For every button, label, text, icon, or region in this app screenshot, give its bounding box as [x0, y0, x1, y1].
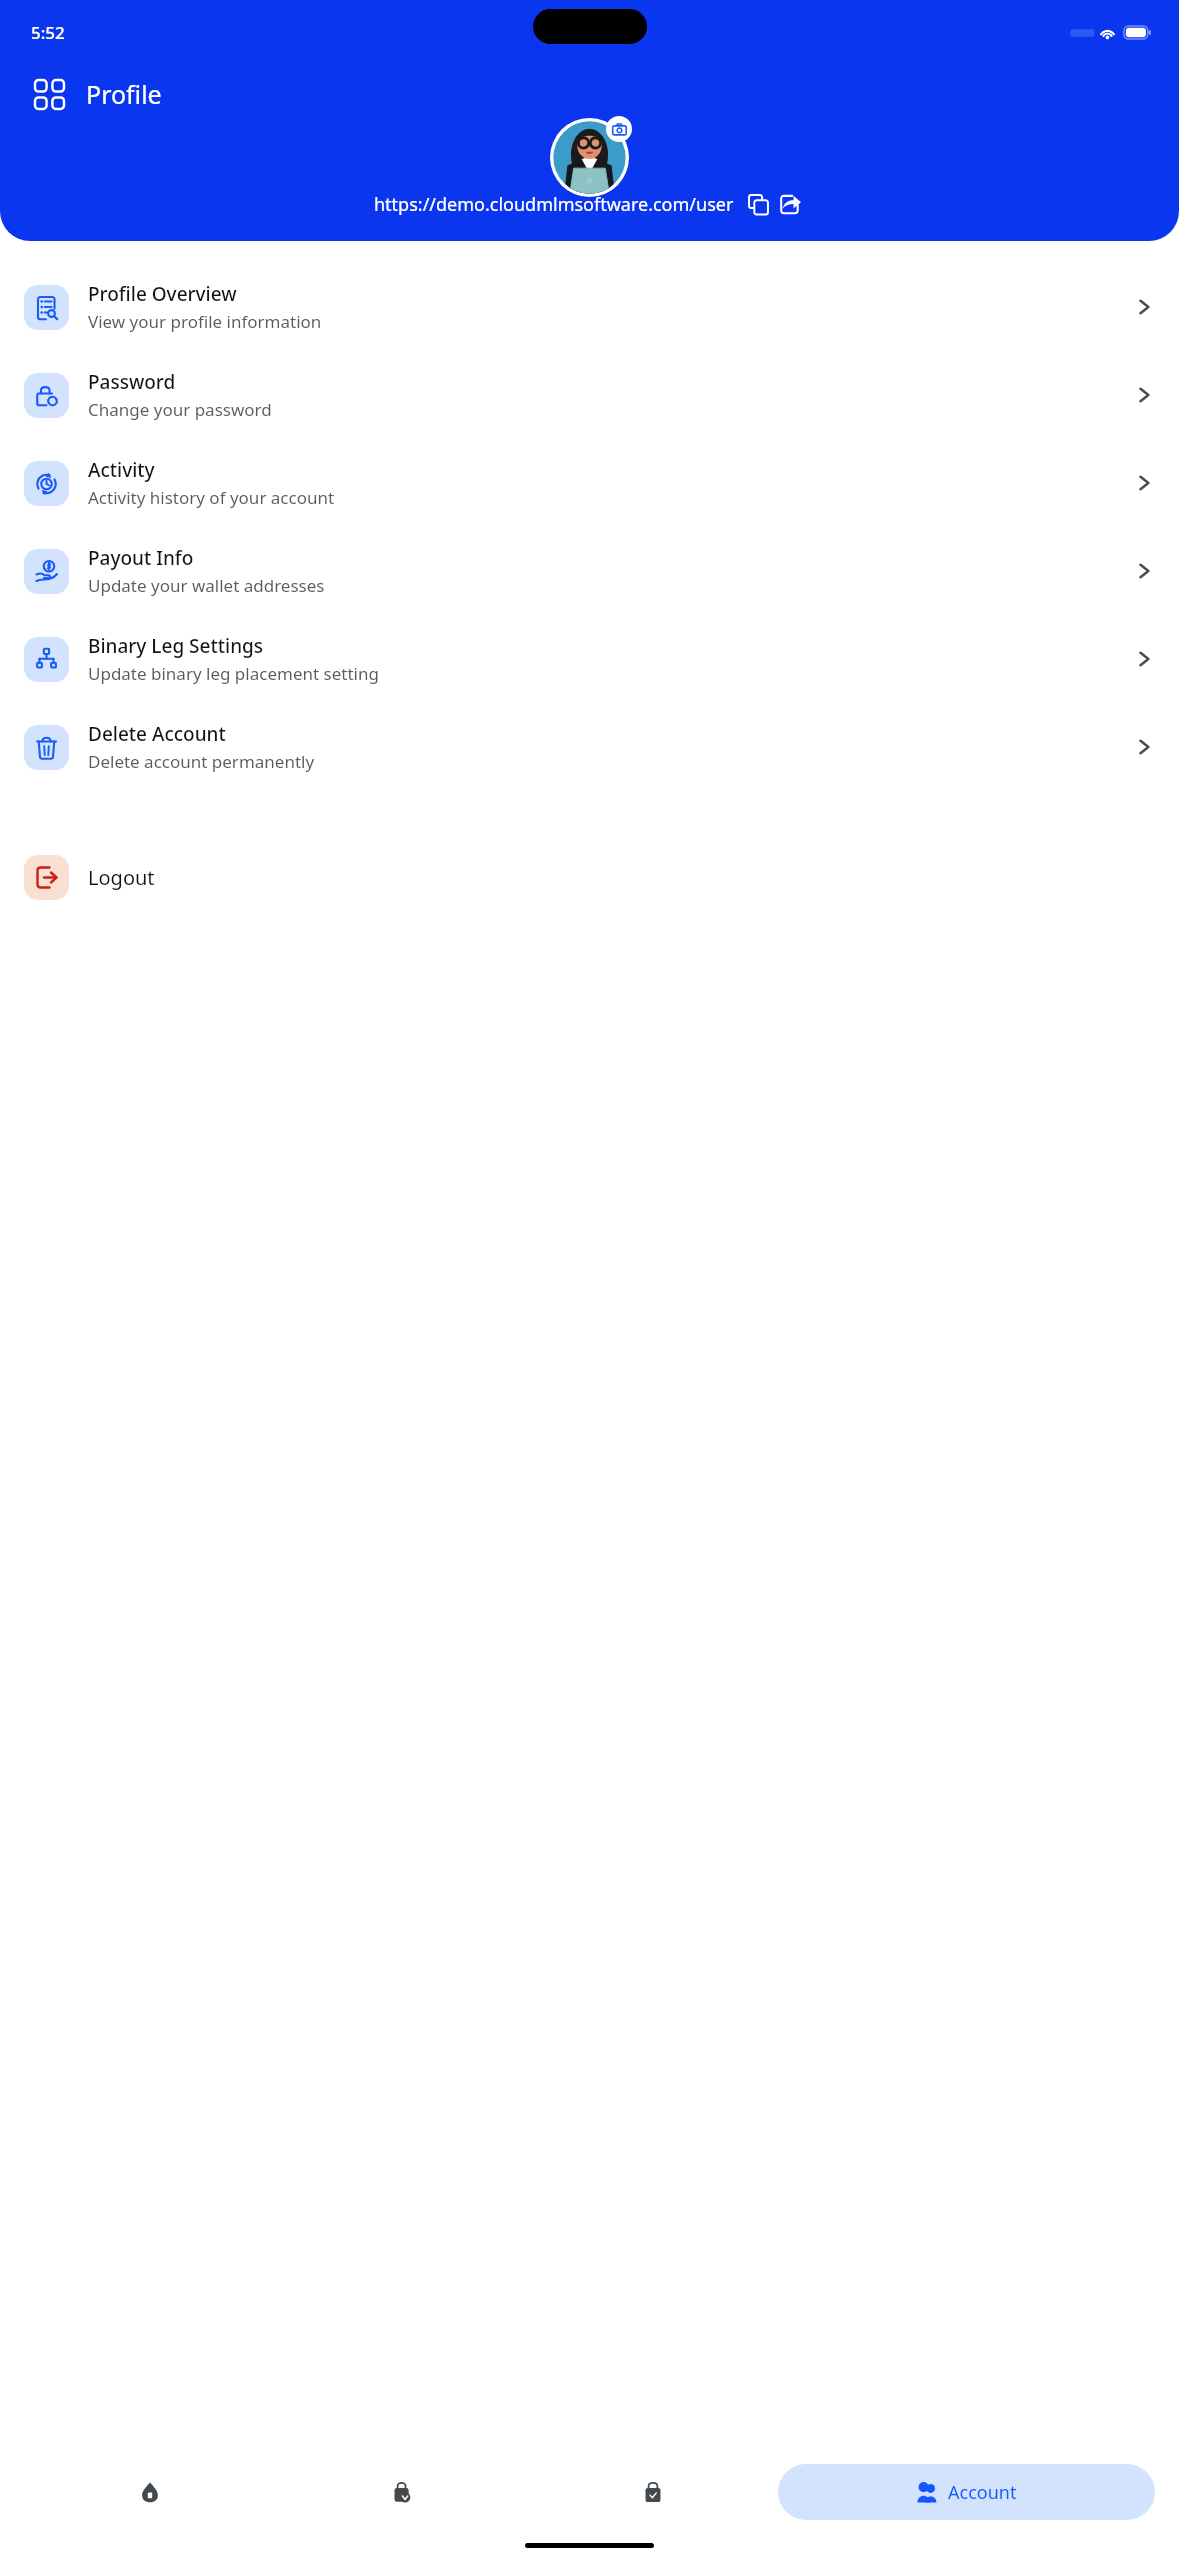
staticText: https://demo.cloudmlmsoftware.com/user: [374, 192, 734, 217]
staticText: Update your wallet addresses: [88, 574, 325, 597]
staticText: Delete account permanently: [88, 750, 315, 773]
staticText: Logout: [88, 864, 155, 891]
button[interactable]: Account: [778, 2464, 1155, 2520]
button[interactable]: Logout: [0, 837, 1179, 917]
button[interactable]: Profile Overview: [0, 263, 1179, 351]
button[interactable]: Delete Account: [0, 703, 1179, 791]
button[interactable]: Share link: [775, 189, 805, 219]
button[interactable]: Password: [0, 351, 1179, 439]
staticText: Binary Leg Settings: [88, 633, 264, 659]
staticText: Account: [948, 2480, 1017, 2505]
staticText: Payout Info: [88, 545, 194, 571]
staticText: View your profile information: [88, 310, 322, 333]
button[interactable]: Payout Info: [0, 527, 1179, 615]
button[interactable]: Menu: [27, 72, 71, 116]
button[interactable]: Orders: [276, 2455, 527, 2529]
staticText: Profile Overview: [88, 281, 237, 307]
staticText: Profile: [86, 77, 162, 111]
button[interactable]: Checkout: [527, 2455, 778, 2529]
button[interactable]: Copy link: [743, 189, 773, 219]
staticText: Password: [88, 369, 176, 395]
button[interactable]: Change photo: [606, 116, 632, 142]
staticText: Change your password: [88, 398, 272, 421]
staticText: Update binary leg placement setting: [88, 662, 379, 685]
button[interactable]: Home: [24, 2455, 276, 2529]
staticText: Activity: [88, 457, 155, 483]
button[interactable]: Activity: [0, 439, 1179, 527]
staticText: Delete Account: [88, 721, 226, 747]
staticText: 5:52: [31, 21, 65, 44]
staticText: Activity history of your account: [88, 486, 335, 509]
button[interactable]: Binary Leg Settings: [0, 615, 1179, 703]
